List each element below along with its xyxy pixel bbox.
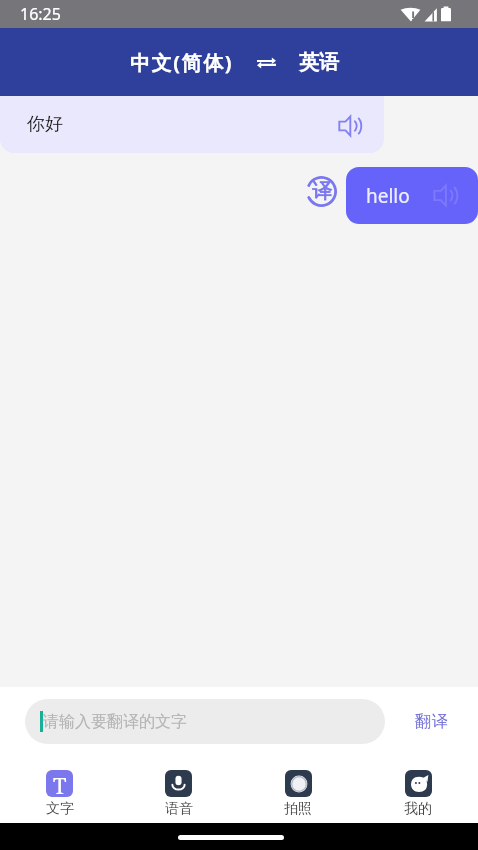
- button[interactable]: 翻译: [385, 699, 478, 744]
- staticText: 拍照: [284, 800, 312, 818]
- button[interactable]: 你好: [0, 96, 384, 153]
- button[interactable]: Swap languages: [238, 49, 295, 77]
- staticText: 译: [312, 179, 332, 204]
- staticText: hello: [366, 183, 410, 209]
- staticText: 语音: [165, 800, 193, 818]
- button[interactable]: T: [0, 755, 119, 823]
- staticText: T: [53, 770, 67, 797]
- button[interactable]: 中文(简体): [126, 41, 238, 84]
- button[interactable]: 语音: [119, 755, 238, 823]
- staticText: 翻译: [415, 711, 448, 732]
- staticText: 文字: [46, 800, 74, 818]
- button[interactable]: Translate: [305, 175, 338, 208]
- staticText: 16:25: [20, 3, 61, 25]
- button[interactable]: 拍照: [238, 755, 358, 823]
- button[interactable]: 请输入要翻译的文字: [25, 699, 385, 744]
- staticText: 请输入要翻译的文字: [43, 712, 187, 732]
- button[interactable]: 我的: [358, 755, 478, 823]
- button[interactable]: hello: [346, 167, 478, 224]
- staticText: 你好: [27, 113, 63, 136]
- staticText: 我的: [404, 800, 432, 818]
- button[interactable]: 英语: [295, 42, 343, 83]
